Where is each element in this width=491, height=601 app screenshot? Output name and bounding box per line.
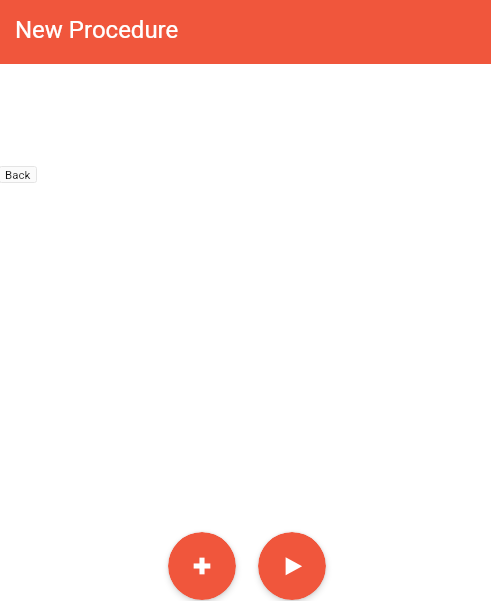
staticText: Back	[5, 168, 31, 181]
button[interactable]: Start procedure	[258, 532, 326, 600]
staticText: New Procedure	[15, 16, 179, 44]
button[interactable]: Back	[0, 166, 37, 183]
button[interactable]: Add step	[168, 532, 236, 600]
